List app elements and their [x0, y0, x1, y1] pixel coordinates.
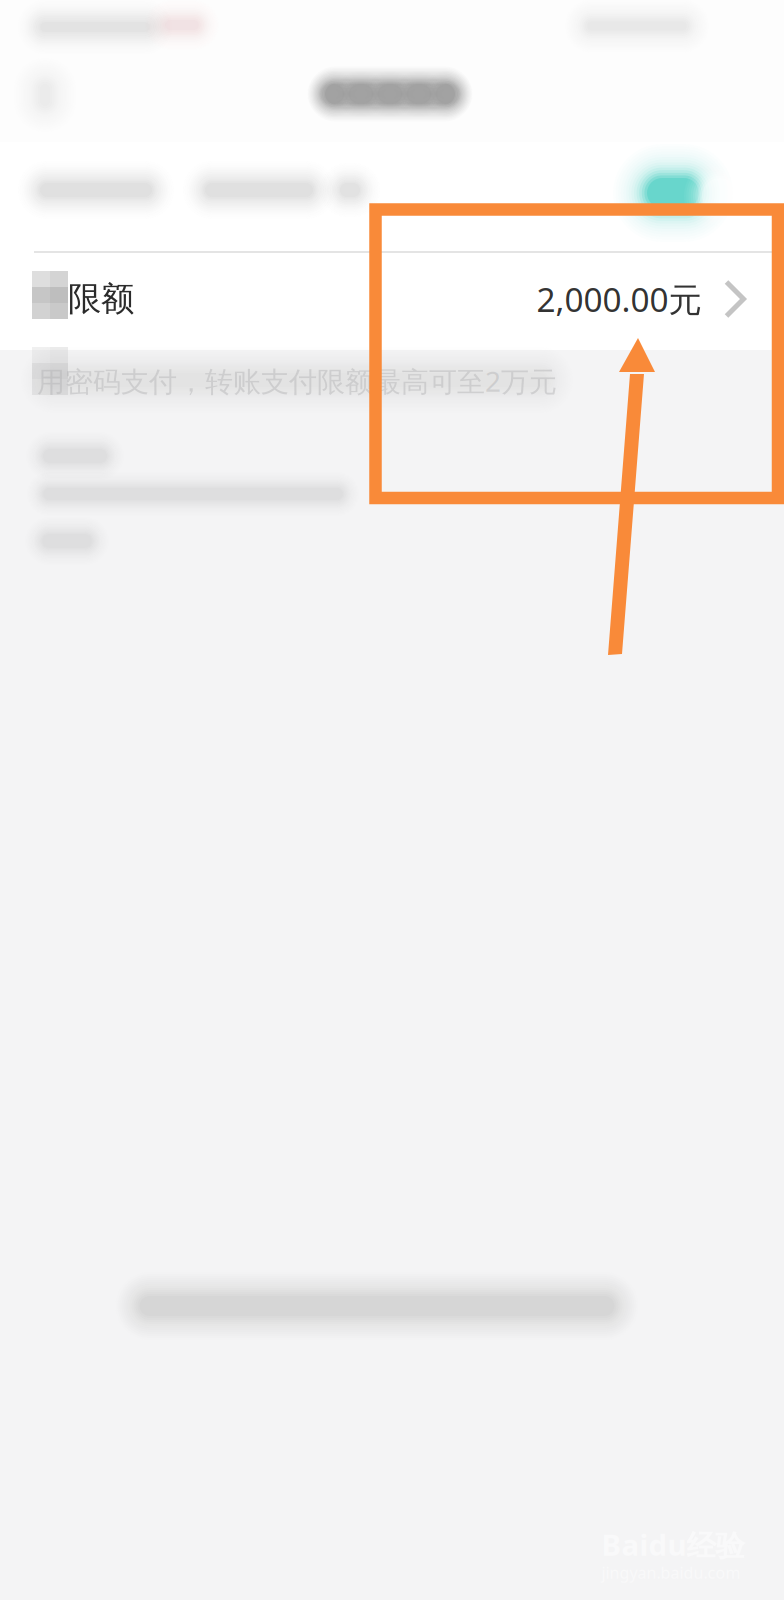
- staticText: 2,000.00元: [536, 277, 701, 321]
- staticText: 限额: [68, 278, 134, 319]
- staticText: 用密码支付，转账支付限额最高可至2万元: [37, 362, 557, 400]
- button[interactable]: 限额: [0, 252, 784, 350]
